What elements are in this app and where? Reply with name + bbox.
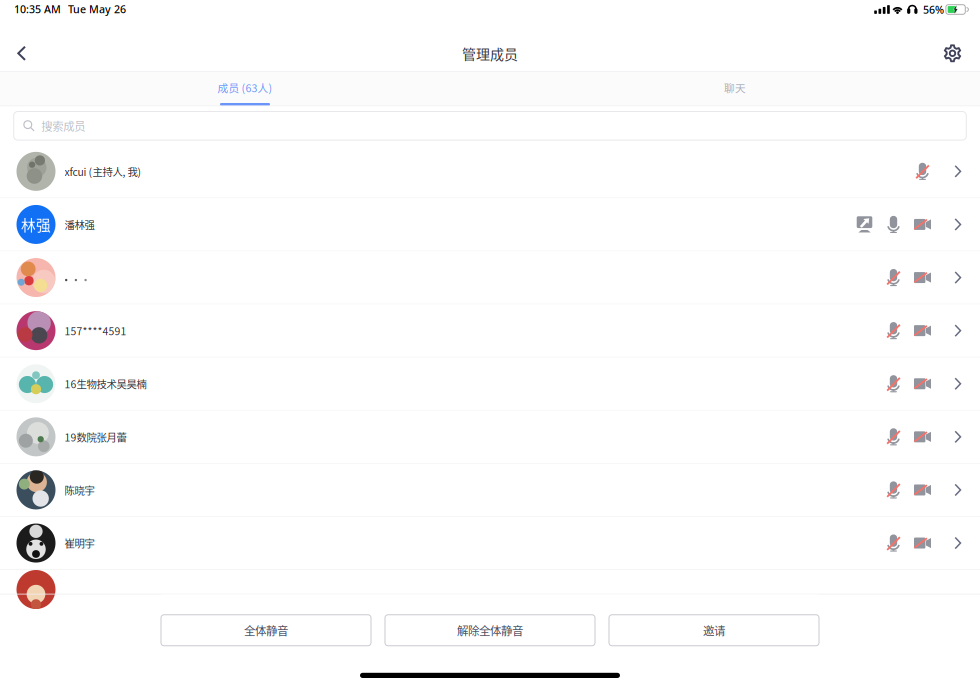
button[interactable]: 崔明宇 bbox=[0, 517, 980, 570]
button[interactable]: 林强 bbox=[0, 198, 980, 251]
staticText: 林强 bbox=[21, 214, 51, 235]
button[interactable]: 成员 (63人) bbox=[0, 72, 490, 106]
button[interactable]: 邀请 bbox=[609, 615, 819, 646]
button[interactable]: 19数院张月蕾 bbox=[0, 411, 980, 464]
button[interactable]: 聊天 bbox=[490, 72, 980, 106]
staticText: 聊天 bbox=[724, 80, 746, 95]
staticText: 19数院张月蕾 bbox=[64, 429, 126, 444]
button[interactable]: Settings bbox=[937, 32, 980, 75]
button[interactable]: 16生物技术吴昊楠 bbox=[0, 358, 980, 411]
staticText: 崔明宇 bbox=[64, 535, 94, 551]
staticText: 陈晓宇 bbox=[64, 482, 94, 497]
staticText: 邀请 bbox=[703, 622, 725, 638]
button[interactable]: xfcui (主持人, 我) bbox=[0, 145, 980, 198]
button[interactable]: 解除全体静音 bbox=[385, 615, 595, 646]
button[interactable] bbox=[0, 251, 980, 304]
staticText: 157****4591 bbox=[64, 323, 126, 338]
staticText: 成员 (63人) bbox=[217, 80, 272, 95]
staticText: 解除全体静音 bbox=[457, 622, 523, 638]
staticText: xfcui (主持人, 我) bbox=[64, 164, 141, 179]
button[interactable]: 全体静音 bbox=[161, 615, 371, 646]
staticText: 56% bbox=[923, 2, 944, 17]
button[interactable]: 陈晓宇 bbox=[0, 464, 980, 517]
staticText: 搜索成员 bbox=[41, 118, 85, 134]
staticText: 16生物技术吴昊楠 bbox=[64, 376, 146, 391]
staticText: 潘林强 bbox=[64, 217, 94, 232]
staticText: 全体静音 bbox=[244, 622, 288, 638]
staticText: Tue May 26 bbox=[68, 2, 126, 16]
staticText: 10:35 AM bbox=[14, 2, 61, 16]
button[interactable]: Back bbox=[0, 32, 43, 75]
button[interactable]: 157****4591 bbox=[0, 304, 980, 358]
staticText: 管理成员 bbox=[462, 43, 518, 63]
